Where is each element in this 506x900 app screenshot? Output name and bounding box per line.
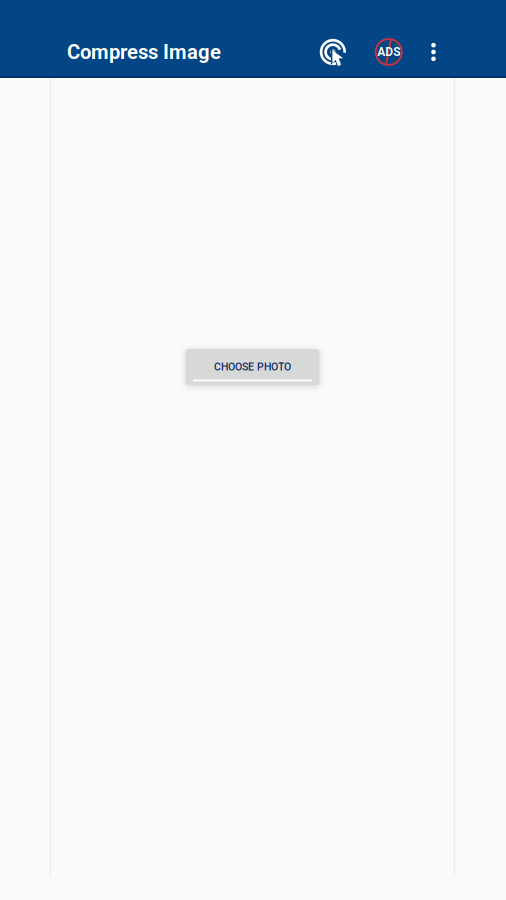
staticText: CHOOSE PHOTO [214, 361, 291, 373]
button[interactable]: Tap target [306, 26, 360, 78]
staticText: Compress Image [67, 40, 221, 64]
button[interactable]: More options [417, 26, 449, 78]
button[interactable]: Remove ads [360, 26, 417, 78]
button[interactable]: CHOOSE PHOTO [185, 349, 319, 385]
staticText: ADS [377, 45, 400, 59]
